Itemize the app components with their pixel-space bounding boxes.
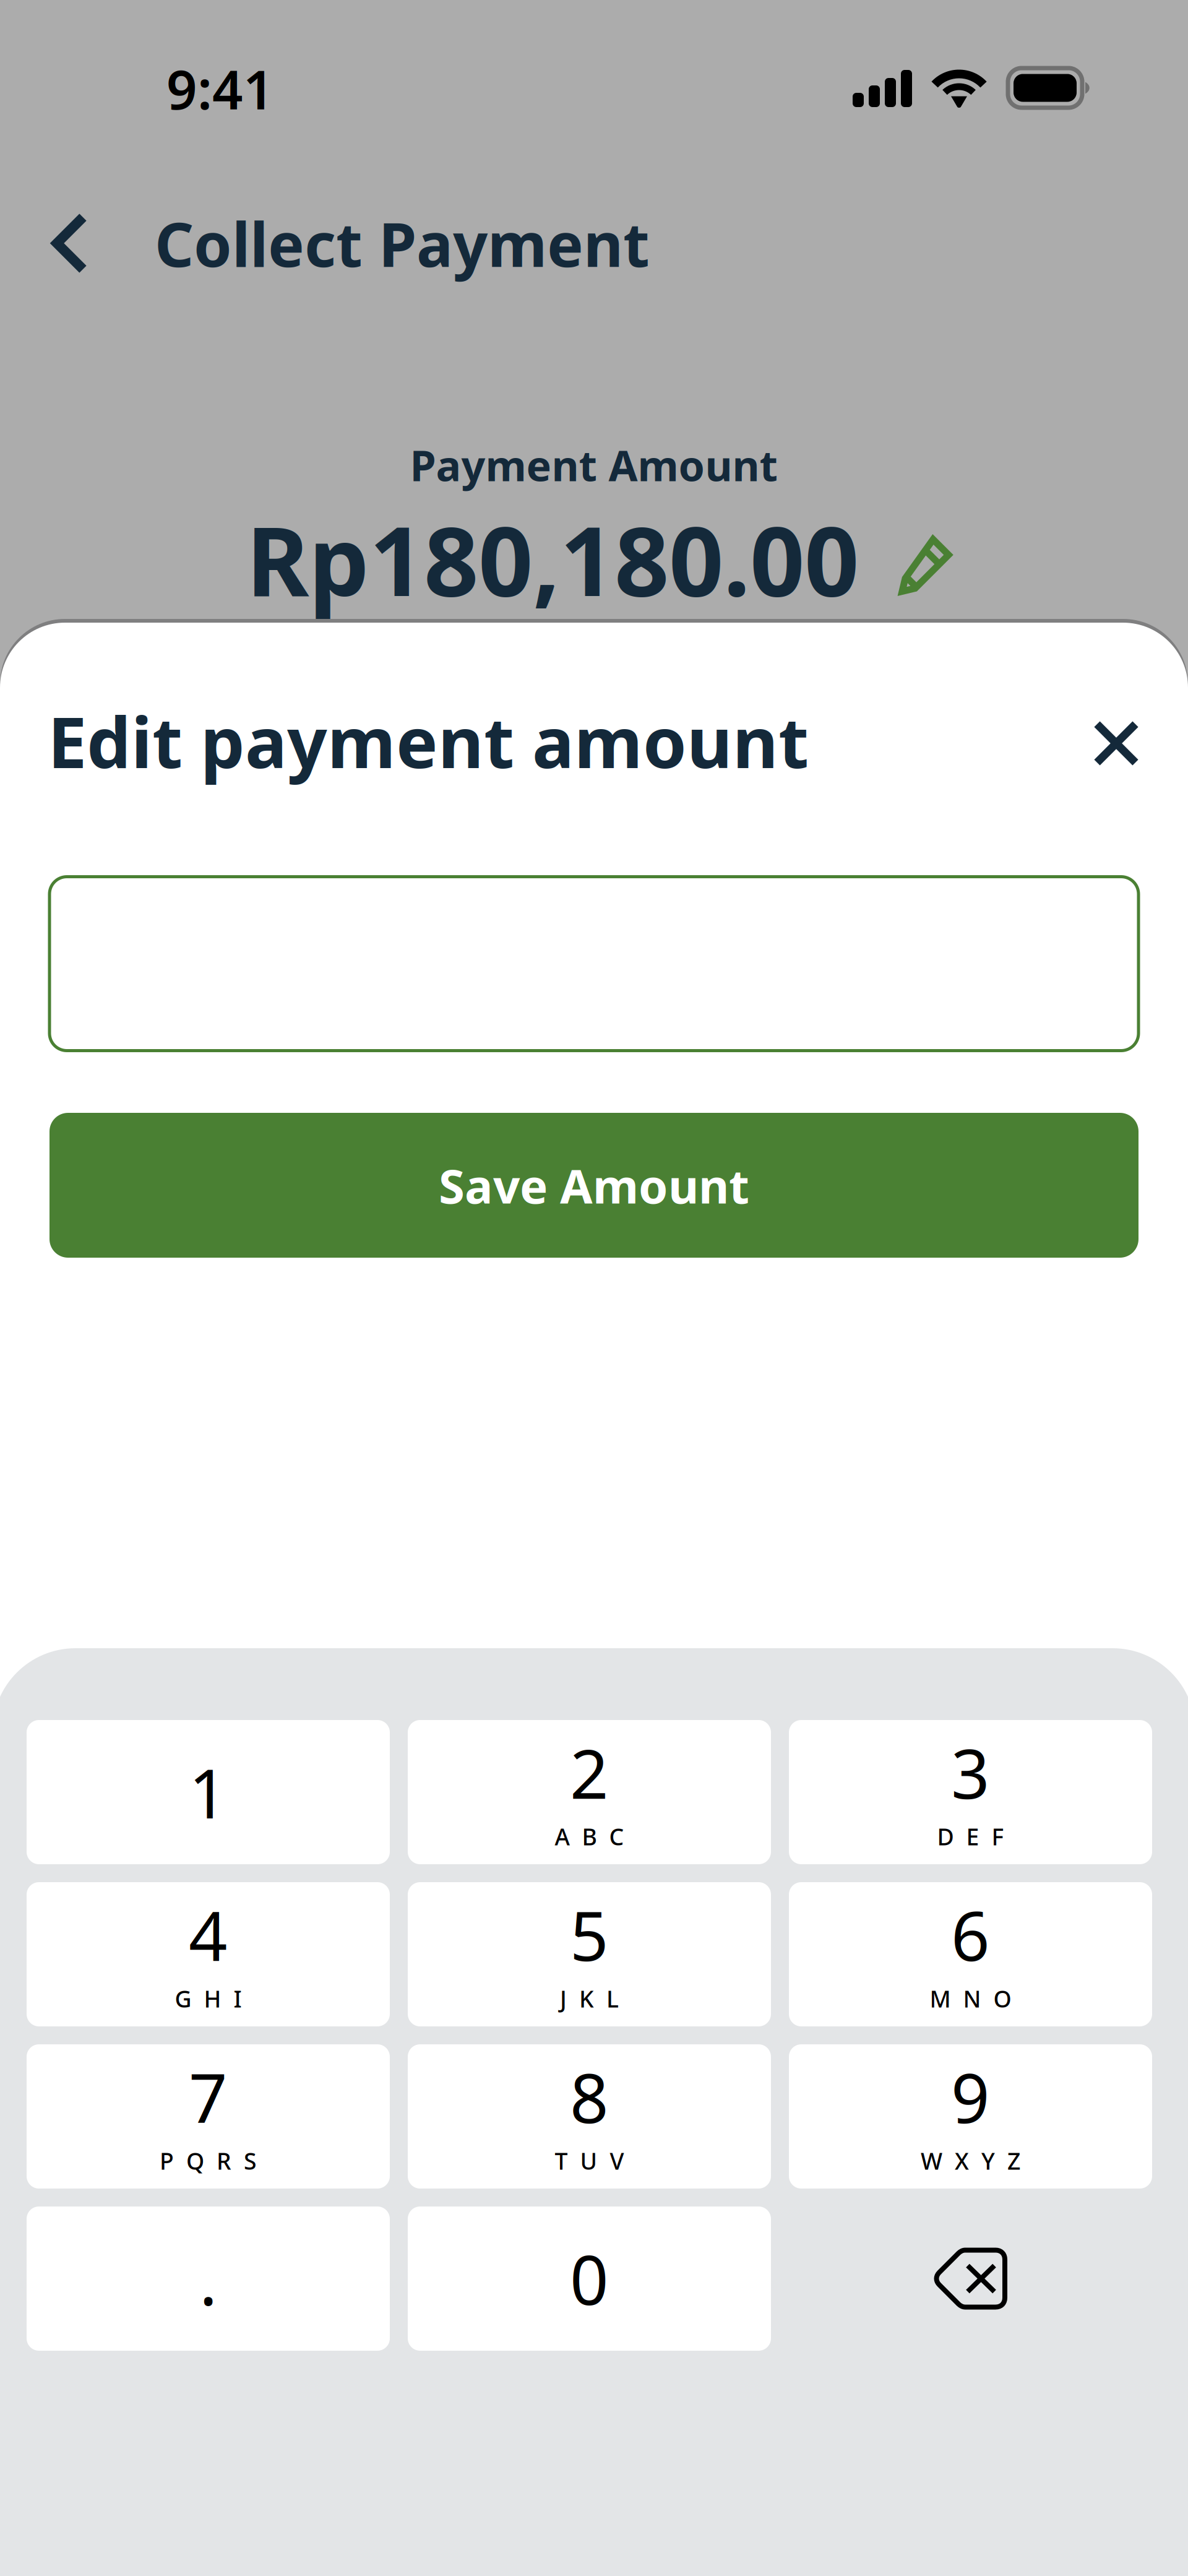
button[interactable]: 8 xyxy=(408,2044,771,2189)
button[interactable]: Delete xyxy=(789,2206,1152,2351)
staticText: . xyxy=(199,2234,217,2324)
staticText: Rp180,180.00 xyxy=(246,495,859,622)
staticText: G H I xyxy=(175,1983,242,2014)
button[interactable]: 7 xyxy=(27,2044,390,2189)
staticText: 9:41 xyxy=(166,53,274,124)
button[interactable]: 6 xyxy=(789,1882,1152,2026)
button[interactable]: Close xyxy=(1080,707,1152,779)
staticText: Payment Amount xyxy=(410,437,778,493)
staticText: Save Amount xyxy=(439,1154,749,1216)
button[interactable]: 9 xyxy=(789,2044,1152,2189)
button[interactable]: 2 xyxy=(408,1720,771,1864)
staticText: 1 xyxy=(189,1747,228,1837)
button[interactable]: 4 xyxy=(27,1882,390,2026)
staticText: 9 xyxy=(951,2052,990,2142)
button[interactable]: Back xyxy=(40,200,100,287)
staticText: 6 xyxy=(951,1890,990,1980)
staticText: P Q R S xyxy=(160,2145,257,2176)
staticText: Edit payment amount xyxy=(48,694,809,787)
staticText: W X Y Z xyxy=(921,2145,1020,2176)
staticText: 5 xyxy=(570,1890,609,1980)
staticText: 0 xyxy=(570,2234,609,2324)
button[interactable]: 3 xyxy=(789,1720,1152,1864)
button[interactable]: 5 xyxy=(408,1882,771,2026)
staticText: D E F xyxy=(937,1821,1004,1852)
button[interactable]: Edit amount xyxy=(898,528,953,590)
staticText: 8 xyxy=(570,2052,609,2142)
staticText: 4 xyxy=(189,1890,228,1980)
button[interactable]: . xyxy=(27,2206,390,2351)
button[interactable]: 0 xyxy=(408,2206,771,2351)
staticText: A B C xyxy=(555,1821,624,1852)
staticText: 2 xyxy=(570,1728,609,1817)
button[interactable]: 1 xyxy=(27,1720,390,1864)
staticText: T U V xyxy=(555,2145,624,2176)
button[interactable]: Save Amount xyxy=(49,1113,1138,1258)
staticText: 3 xyxy=(951,1728,990,1817)
staticText: Collect Payment xyxy=(155,203,650,284)
staticText: 7 xyxy=(189,2052,228,2142)
staticText: J K L xyxy=(560,1983,619,2014)
staticText: M N O xyxy=(930,1983,1011,2014)
